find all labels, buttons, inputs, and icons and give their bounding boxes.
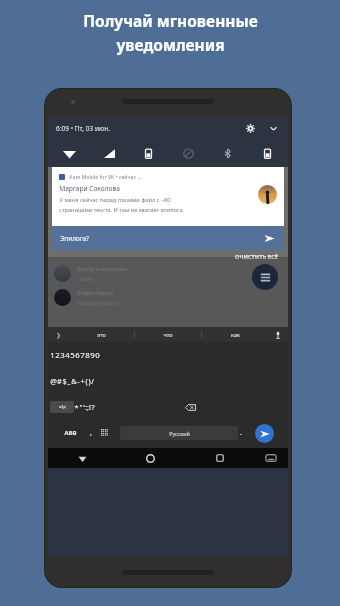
button[interactable]: Bluetooth (216, 142, 238, 164)
button[interactable]: 0 (95, 342, 100, 368)
staticText: 2 (55, 350, 60, 361)
staticText: 8 (85, 350, 90, 361)
button[interactable]: Settings (243, 121, 257, 135)
staticText: & (71, 376, 77, 386)
staticText: Маргари Соколова (59, 184, 120, 193)
button[interactable]: Send (262, 231, 276, 245)
staticText: У меня сейчас перед глазами файл с ~80 (59, 196, 171, 204)
button[interactable]: ' (83, 394, 85, 420)
button[interactable]: . (240, 420, 242, 446)
button[interactable]: Эпилога? (52, 226, 284, 250)
staticText: 6:09 • Пт, 03 июн. (56, 124, 110, 133)
button[interactable]: как (202, 327, 268, 342)
button[interactable]: # (57, 368, 62, 394)
button[interactable]: ; (87, 394, 89, 420)
staticText: 6 (75, 350, 80, 361)
button[interactable]: это (68, 327, 134, 342)
button[interactable]: Do not disturb (177, 142, 199, 164)
button[interactable]: Voice input (268, 327, 288, 342)
button[interactable]: More suggestions (48, 327, 68, 342)
staticText: 3 (60, 350, 65, 361)
button[interactable]: / (91, 368, 94, 394)
button[interactable]: ! (89, 394, 91, 420)
staticText: " (79, 402, 83, 412)
button[interactable]: 3 (60, 342, 65, 368)
button[interactable]: Recents (185, 448, 254, 468)
button[interactable]: Клипы выключены (54, 261, 282, 285)
staticText: ) (88, 376, 91, 386)
button[interactable]: - (77, 368, 80, 394)
button[interactable]: Emoji (92, 420, 118, 446)
button[interactable]: 5 (70, 342, 75, 368)
button[interactable]: Яндекс Карты (54, 285, 282, 309)
button[interactable]: Home (116, 448, 185, 468)
button[interactable]: Wi-Fi (58, 142, 80, 164)
button[interactable]: Battery (256, 142, 278, 164)
staticText: 7 (80, 350, 85, 361)
staticText: Маршрут домой (77, 299, 119, 306)
staticText: уведомления (116, 34, 225, 55)
button[interactable]: 4 (65, 342, 70, 368)
button[interactable]: _ (67, 368, 71, 394)
button[interactable]: $ (62, 368, 67, 394)
staticText: # (57, 376, 62, 386)
staticText: $ (62, 376, 67, 386)
staticText: . (240, 428, 242, 438)
staticText: ❯ (56, 332, 61, 338)
button[interactable]: Send (255, 424, 274, 443)
staticText: ; (87, 402, 89, 412)
staticText: * (74, 402, 79, 412)
button[interactable]: 2 (55, 342, 60, 368)
staticText: @ (50, 376, 57, 386)
staticText: АБВ (64, 429, 77, 437)
staticText: : (85, 402, 87, 412)
button[interactable]: @ (50, 368, 57, 394)
staticText: это (97, 331, 106, 339)
button[interactable]: Backspace (95, 394, 286, 420)
staticText: ! (89, 402, 91, 412)
button[interactable]: & (71, 368, 77, 394)
staticText: Эпилога? (60, 234, 89, 243)
staticText: ' (83, 402, 85, 412)
button[interactable]: : (85, 394, 87, 420)
button[interactable]: Back (48, 448, 116, 468)
button[interactable]: Battery saver (137, 142, 159, 164)
button[interactable]: Kate Mobile for VK • сейчас ⌄ (52, 167, 284, 226)
button[interactable]: 1 (50, 342, 55, 368)
button[interactable]: 7 (80, 342, 85, 368)
button[interactable]: * (74, 394, 79, 420)
button[interactable]: 9 (90, 342, 95, 368)
button[interactable]: Switch keyboard (254, 448, 288, 468)
button[interactable]: + (80, 368, 85, 394)
button[interactable]: что (135, 327, 201, 342)
staticText: что (163, 331, 173, 339)
staticText: ОЧИСТИТЬ ВСЁ (235, 253, 278, 261)
button[interactable]: Русский (120, 426, 238, 440)
staticText: Стили (77, 275, 93, 282)
button[interactable]: ( (85, 368, 88, 394)
staticText: =\< (59, 404, 66, 410)
button[interactable]: Mobile data (98, 142, 120, 164)
staticText: Получай мгновенные (83, 10, 258, 31)
staticText: Клипы выключены (77, 265, 127, 272)
button[interactable]: 8 (85, 342, 90, 368)
button[interactable]: " (79, 394, 83, 420)
button[interactable]: ) (88, 368, 91, 394)
button[interactable]: Menu (252, 264, 278, 290)
staticText: 5 (70, 350, 75, 361)
button[interactable]: ? (91, 394, 95, 420)
staticText: Русский (169, 430, 190, 437)
staticText: ? (91, 402, 95, 412)
staticText: как (231, 331, 240, 339)
staticText: + (80, 376, 85, 386)
staticText: - (77, 376, 80, 386)
staticText: , (90, 428, 92, 438)
staticText: 9 (90, 350, 95, 361)
button[interactable]: =\< (50, 401, 74, 413)
button[interactable]: , (90, 420, 92, 446)
staticText: 1 (50, 350, 55, 361)
button[interactable]: Expand (266, 121, 280, 135)
button[interactable]: 6 (75, 342, 80, 368)
button[interactable]: АБВ (50, 420, 90, 446)
staticText: _ (67, 376, 71, 386)
